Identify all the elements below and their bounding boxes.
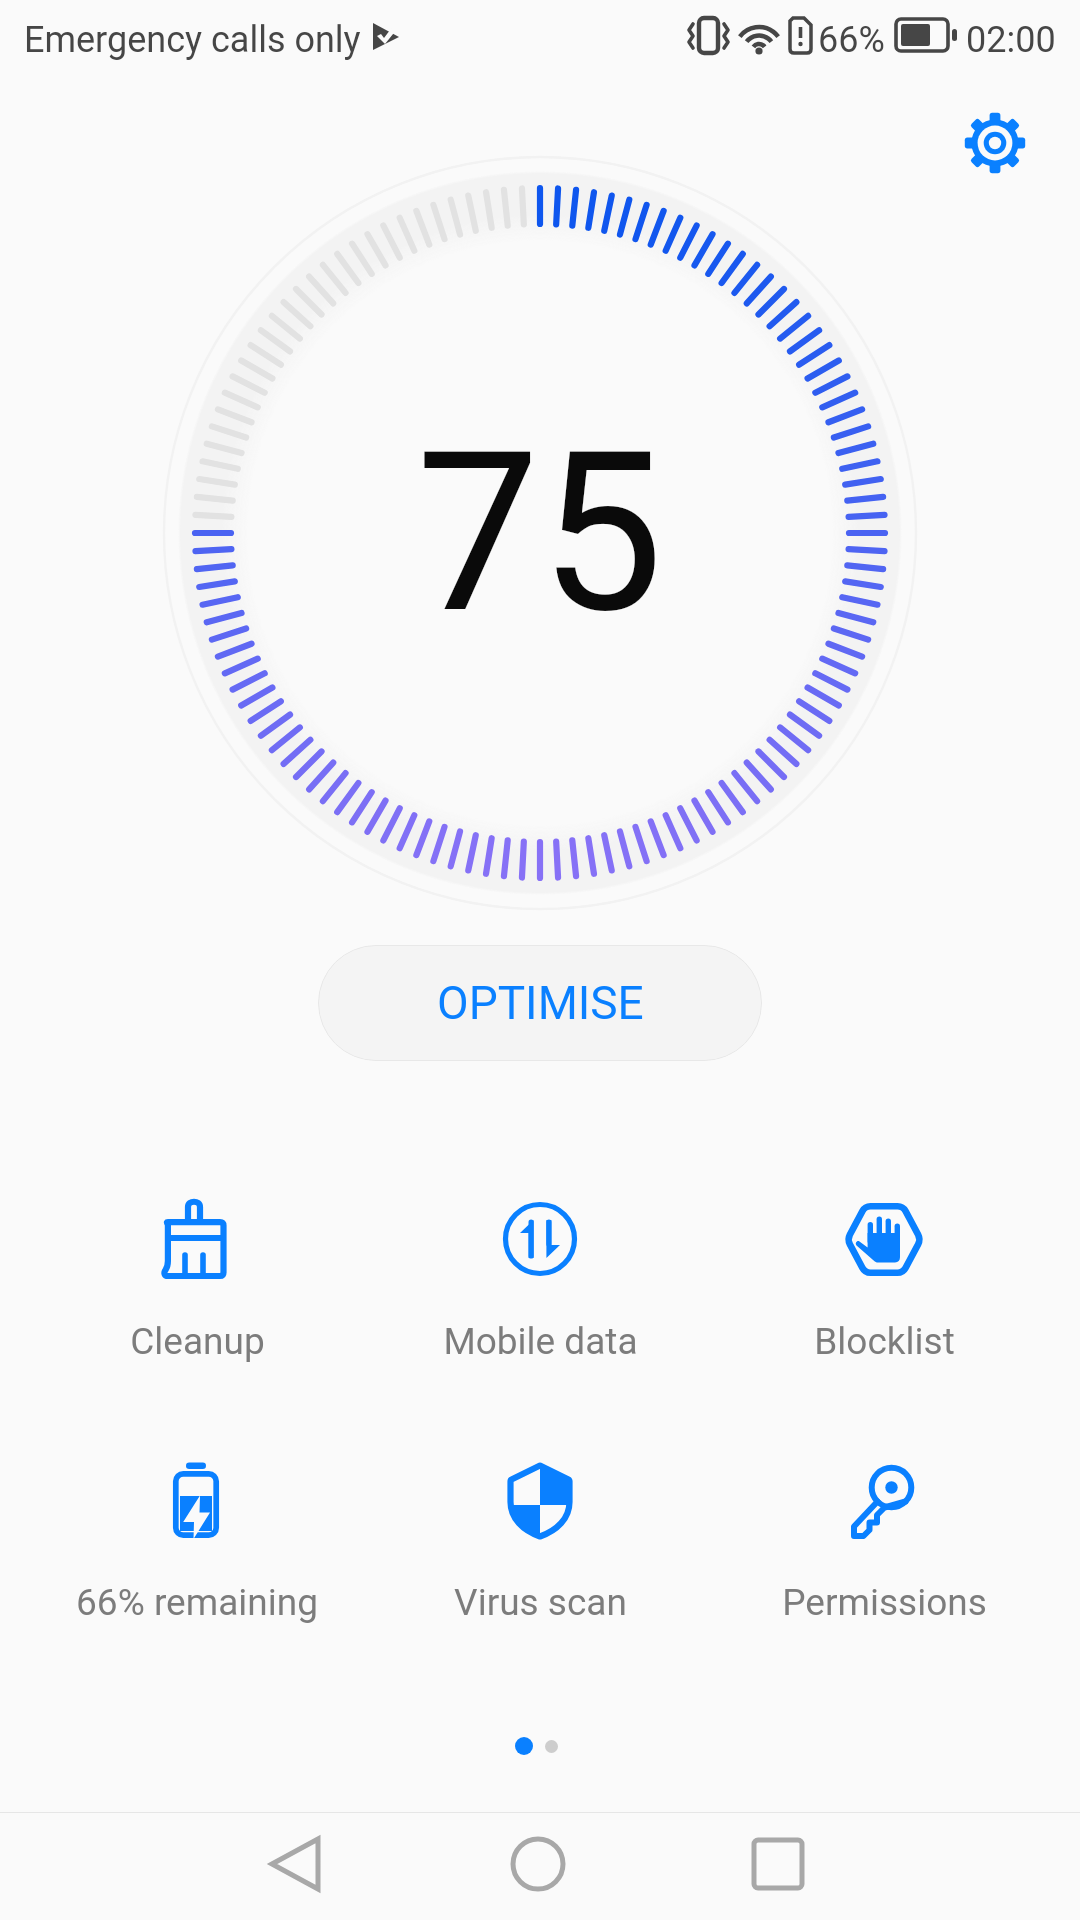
staticText: 02:00 <box>966 19 1056 61</box>
button[interactable]: Back <box>250 1814 350 1914</box>
button[interactable]: 66% remaining <box>27 1430 367 1620</box>
button[interactable]: Mobile data <box>370 1169 710 1359</box>
staticText: Mobile data <box>443 1320 638 1363</box>
staticText: Blocklist <box>814 1320 955 1363</box>
button[interactable]: Home <box>488 1814 588 1914</box>
staticText: Cleanup <box>130 1320 265 1363</box>
staticText: 66% <box>818 19 885 61</box>
button[interactable]: Recents <box>728 1814 828 1914</box>
button[interactable]: Page 1 <box>515 1737 533 1755</box>
staticText: Virus scan <box>454 1581 627 1624</box>
staticText: Emergency calls only <box>24 19 361 61</box>
button[interactable]: Cleanup <box>27 1169 367 1359</box>
button[interactable]: Virus scan <box>370 1430 710 1620</box>
staticText: 75 <box>416 405 664 663</box>
staticText: 66% remaining <box>76 1581 318 1624</box>
button[interactable]: Permissions <box>714 1430 1054 1620</box>
button[interactable]: Blocklist <box>714 1169 1054 1359</box>
staticText: Permissions <box>782 1581 987 1624</box>
staticText: OPTIMISE <box>437 976 644 1030</box>
button[interactable]: OPTIMISE <box>318 945 762 1061</box>
button[interactable]: Settings <box>955 103 1035 183</box>
